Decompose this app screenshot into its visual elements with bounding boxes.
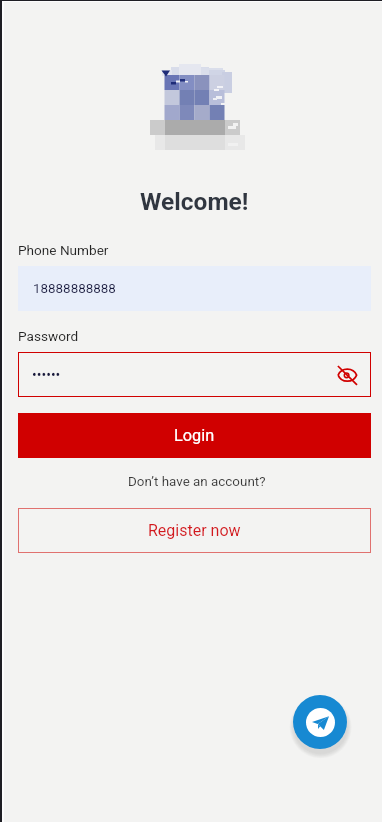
button[interactable]: 18888888888: [18, 266, 371, 311]
button[interactable]: Register now: [18, 508, 371, 553]
staticText: Register now: [148, 521, 241, 540]
staticText: Don’t have an account?: [128, 474, 266, 490]
staticText: 18888888888: [33, 281, 116, 297]
staticText: Phone Number: [18, 242, 109, 258]
staticText: Password: [18, 328, 79, 344]
staticText: Welcome!: [140, 187, 249, 216]
staticText: Login: [174, 426, 215, 445]
button[interactable]: Hide password: [336, 364, 358, 386]
staticText: ••••••: [32, 367, 61, 383]
button[interactable]: Login: [18, 413, 371, 458]
button[interactable]: ••••••: [18, 352, 371, 397]
button[interactable]: Contact us on Telegram: [293, 695, 347, 749]
